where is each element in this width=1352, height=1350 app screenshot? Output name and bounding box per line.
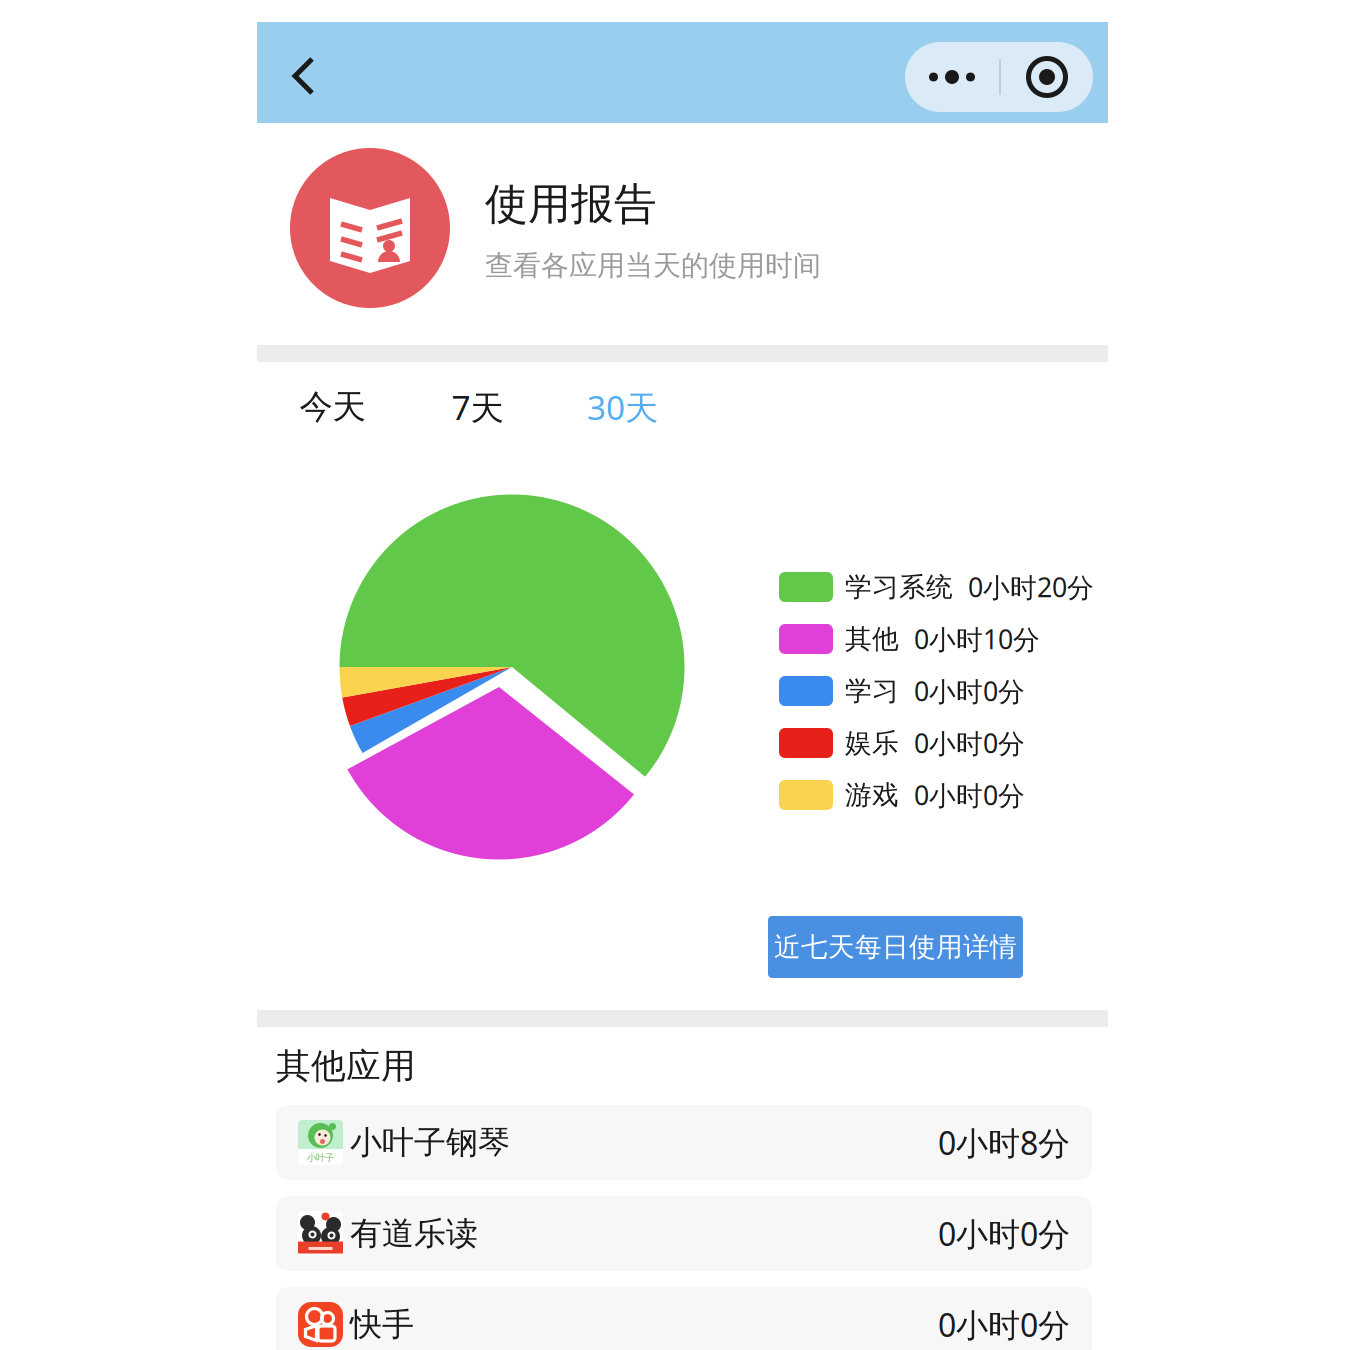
button[interactable]: 今天 xyxy=(260,376,405,438)
staticText: 今天 xyxy=(299,386,365,427)
button[interactable]: 7天 xyxy=(405,376,550,438)
staticText: 使用报告 xyxy=(485,178,657,230)
button[interactable]: More xyxy=(905,42,999,112)
button[interactable]: 快手 xyxy=(276,1287,1092,1350)
staticText: 快手 xyxy=(350,1305,414,1344)
button[interactable]: 小叶子 xyxy=(276,1105,1092,1180)
staticText: 0小时0分 xyxy=(914,673,1025,709)
staticText: 0小时20分 xyxy=(968,569,1094,605)
staticText: 0小时10分 xyxy=(914,621,1040,657)
staticText: 0小时0分 xyxy=(938,1212,1070,1255)
staticText: 其他应用 xyxy=(276,1045,416,1088)
button[interactable]: Back xyxy=(269,39,339,113)
staticText: 小叶子 xyxy=(307,1152,334,1163)
button[interactable]: 近七天每日使用详情 xyxy=(768,916,1023,978)
button[interactable]: 有道乐读 xyxy=(276,1196,1092,1271)
button[interactable]: 30天 xyxy=(550,376,695,438)
staticText: 有道乐读 xyxy=(350,1214,478,1253)
staticText: 30天 xyxy=(587,385,658,429)
staticText: 学习 xyxy=(845,675,899,707)
staticText: 学习系统 xyxy=(845,571,953,603)
button[interactable]: Close xyxy=(1001,42,1093,112)
staticText: 0小时0分 xyxy=(914,777,1025,813)
staticText: 游戏 xyxy=(845,779,899,811)
staticText: 0小时0分 xyxy=(938,1303,1070,1346)
staticText: 查看各应用当天的使用时间 xyxy=(485,248,821,283)
staticText: 0小时8分 xyxy=(938,1121,1070,1164)
staticText: 小叶子钢琴 xyxy=(350,1123,510,1162)
staticText: 7天 xyxy=(451,385,503,429)
staticText: 其他 xyxy=(845,623,899,655)
staticText: 近七天每日使用详情 xyxy=(774,931,1017,963)
staticText: 娱乐 xyxy=(845,727,899,759)
staticText: 0小时0分 xyxy=(914,725,1025,761)
